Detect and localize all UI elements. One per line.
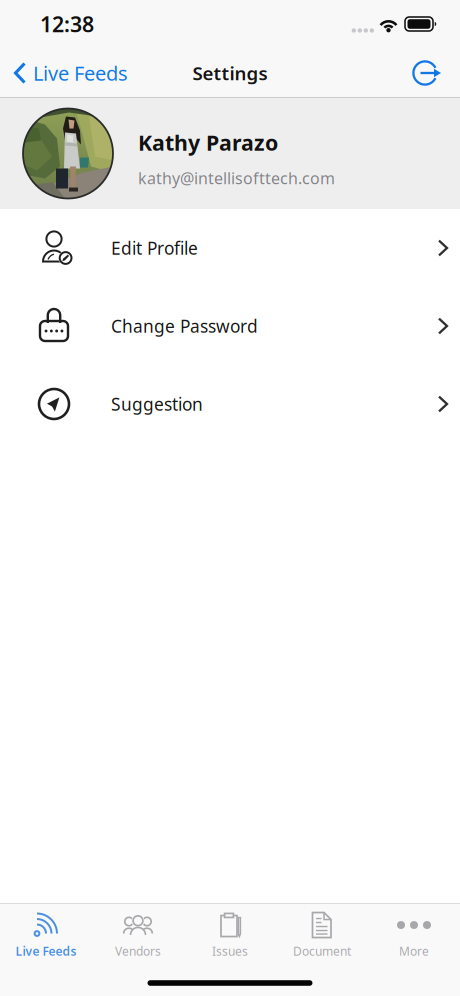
staticText: More — [399, 943, 429, 959]
staticText: Suggestion — [111, 392, 203, 415]
button[interactable]: More — [368, 904, 460, 966]
button[interactable]: Issues — [184, 904, 276, 966]
button[interactable]: Edit Profile — [0, 209, 460, 287]
staticText: 12:38 — [40, 10, 94, 38]
button[interactable]: Document — [276, 904, 368, 966]
staticText: Issues — [212, 943, 248, 959]
button[interactable]: Change Password — [0, 287, 460, 365]
button[interactable]: Suggestion — [0, 365, 460, 443]
staticText: Change Password — [111, 314, 258, 337]
staticText: Edit Profile — [111, 236, 198, 259]
staticText: Live Feeds — [33, 60, 128, 86]
button[interactable]: Vendors — [92, 904, 184, 966]
staticText: Settings — [192, 61, 267, 85]
staticText: Kathy Parazo — [138, 128, 278, 156]
button[interactable]: Log out — [394, 48, 460, 98]
staticText: Live Feeds — [15, 943, 76, 959]
button[interactable]: Live Feeds — [0, 48, 142, 98]
button[interactable]: Live Feeds — [0, 904, 92, 966]
staticText: kathy@intellisofttech.com — [138, 167, 335, 189]
staticText: Document — [293, 943, 351, 959]
staticText: Vendors — [115, 943, 161, 959]
